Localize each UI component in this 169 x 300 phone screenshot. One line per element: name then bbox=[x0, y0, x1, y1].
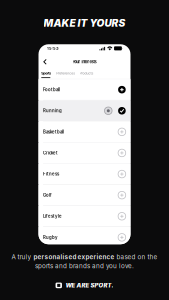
button[interactable]: Sports bbox=[41, 68, 56, 78]
staticText: sports and brands and you love. bbox=[35, 262, 134, 270]
staticText: Products bbox=[79, 71, 93, 75]
staticText: Preferences bbox=[56, 71, 75, 75]
button[interactable]: Fitness bbox=[38, 164, 130, 184]
button[interactable]: Rugby bbox=[38, 227, 130, 248]
staticText: Rugby bbox=[43, 235, 58, 240]
staticText: Cricket bbox=[43, 150, 58, 156]
button[interactable]: Preferences bbox=[56, 68, 79, 78]
staticText: Sports bbox=[41, 71, 51, 75]
button[interactable]: Golf bbox=[38, 185, 130, 205]
staticText: WE ARE SPORT. bbox=[65, 282, 113, 289]
staticText: Running bbox=[43, 108, 62, 113]
staticText: 15:53 bbox=[47, 46, 59, 51]
staticText: Golf bbox=[43, 193, 52, 198]
button[interactable]: Basketball bbox=[38, 122, 130, 142]
staticText: MAKE IT YOURS bbox=[43, 17, 125, 29]
button[interactable]: Lifestyle bbox=[38, 206, 130, 227]
staticText: Fitness bbox=[43, 171, 59, 177]
staticText: Lifestyle bbox=[43, 214, 62, 219]
button[interactable]: Cricket bbox=[38, 143, 130, 163]
staticText: Your Interests bbox=[72, 59, 96, 64]
button[interactable]: Products bbox=[79, 68, 93, 78]
button[interactable]: Back bbox=[38, 56, 53, 68]
button[interactable]: Football bbox=[38, 79, 130, 100]
staticText: Basketball bbox=[43, 129, 64, 134]
button[interactable]: Running bbox=[38, 100, 130, 121]
staticText: Football bbox=[43, 87, 60, 92]
staticText: A truly personalised experience based on… bbox=[11, 253, 157, 261]
